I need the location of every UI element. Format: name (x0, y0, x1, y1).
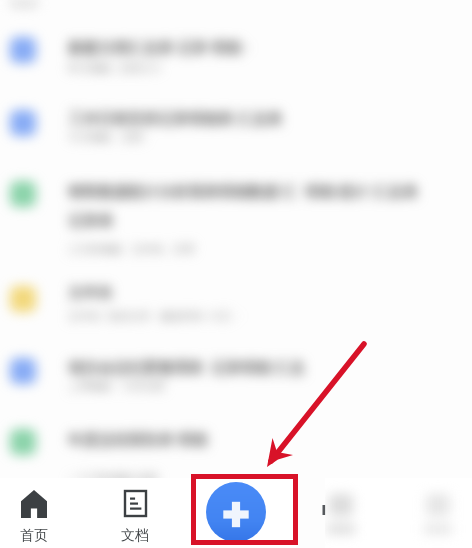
button[interactable]: 文档 (105, 491, 165, 548)
button[interactable]: New (206, 482, 266, 542)
staticText: 首页 (20, 527, 48, 545)
button[interactable]: 首页 (4, 490, 64, 548)
staticText: 文件夹 包含文件 修改时间 今天 · (68, 308, 240, 323)
staticText: 昨天编辑 文档大小 (68, 60, 162, 75)
staticText: 新建文档汇总表 记录 明细 · (68, 37, 249, 57)
staticText: 一个月前编辑 表格 (68, 470, 159, 485)
staticText: 年度总结报告表 明细 (68, 429, 207, 449)
staticText: 上周编辑 工作文档 (68, 378, 165, 393)
staticText: 今天编辑 文档 · (68, 129, 149, 144)
staticText: 文件夹 (68, 284, 113, 303)
staticText: 工作日程安排记录明细表 汇总表 (68, 108, 282, 128)
staticText: 记录表 (68, 212, 113, 231)
staticText: 三天前编辑 文件夹 共享 (68, 241, 196, 256)
staticText: 项目会议纪要整理表 记录明细 汇总 (68, 357, 305, 377)
staticText: 文档 (121, 527, 149, 545)
staticText: 销售数据统计分析报表明细数据 汇 明细 统计 汇总表 (68, 181, 418, 201)
